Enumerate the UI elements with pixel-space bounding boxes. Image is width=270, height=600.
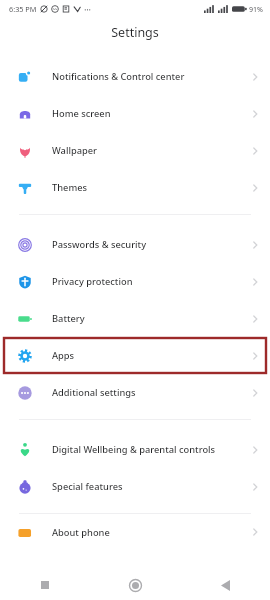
staticText: Notifications & Control center [52,70,185,83]
button[interactable]: About phone [0,526,270,538]
staticText: Apps [52,349,75,362]
staticText: Additional settings [52,386,136,399]
staticText: 91% [249,4,264,14]
button[interactable]: Additional settings [0,374,270,411]
button[interactable]: Passwords & security [0,226,270,263]
button[interactable]: Notifications & Control center [0,58,270,95]
button[interactable]: Themes [0,169,270,206]
button[interactable]: Battery [0,300,270,337]
staticText: Wallpaper [52,144,98,157]
staticText: Settings [111,24,159,41]
staticText: Special features [52,480,123,493]
button[interactable]: Home screen [0,95,270,132]
staticText: Home screen [52,107,111,120]
button[interactable]: Home [90,570,180,600]
button[interactable]: Recents [0,570,90,600]
staticText: Battery [52,312,85,325]
button[interactable]: Special features [0,468,270,505]
button[interactable]: Privacy protection [0,263,270,300]
staticText: 6:35 PM [9,4,37,14]
button[interactable]: Digital Wellbeing & parental controls [0,431,270,468]
staticText: Privacy protection [52,275,133,288]
button[interactable]: Apps [0,337,270,374]
staticText: Passwords & security [52,238,147,251]
staticText: About phone [52,526,110,538]
staticText: Themes [52,181,88,194]
button[interactable]: Back [180,570,270,600]
button[interactable]: Wallpaper [0,132,270,169]
staticText: Digital Wellbeing & parental controls [52,443,216,456]
